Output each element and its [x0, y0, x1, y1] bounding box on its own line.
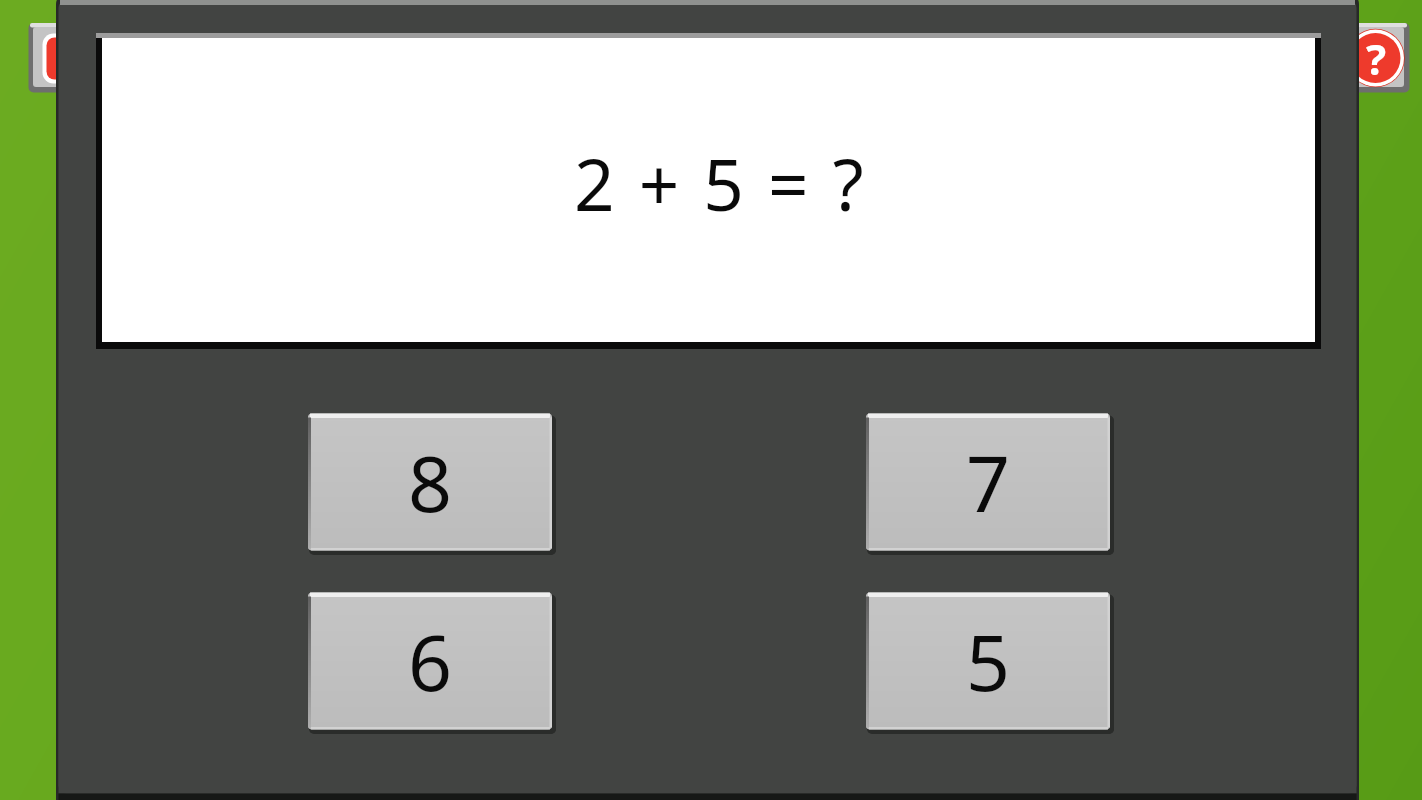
staticText: 8 — [408, 430, 453, 535]
staticText: 6 — [408, 609, 453, 714]
staticText: 5 — [966, 609, 1011, 714]
staticText: 2 + 5 = ? — [574, 135, 867, 232]
staticText: ? — [1366, 30, 1387, 84]
staticText: 7 — [966, 430, 1011, 535]
